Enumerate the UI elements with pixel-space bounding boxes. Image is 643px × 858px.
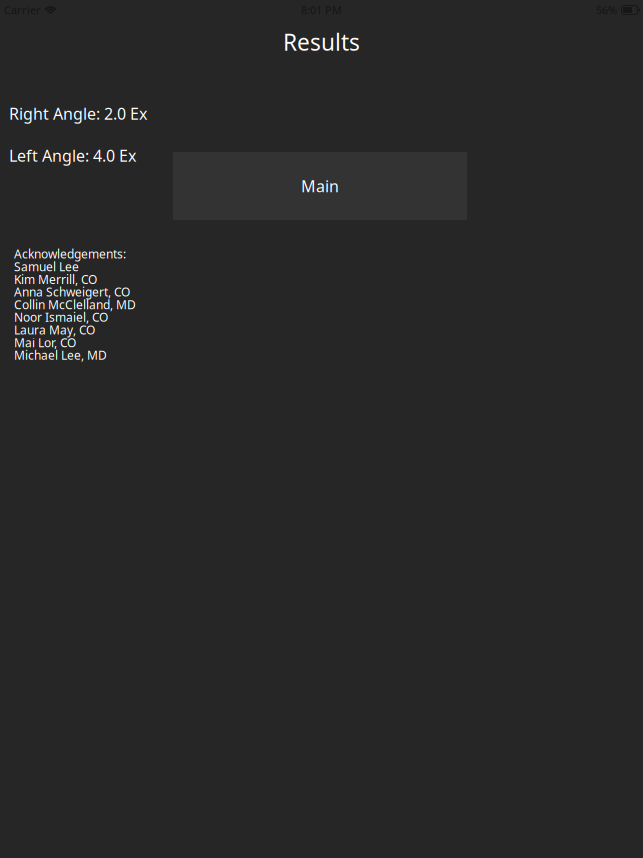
button[interactable]: Main bbox=[173, 152, 467, 220]
staticText: Collin McClelland, MD bbox=[14, 297, 136, 312]
staticText: Michael Lee, MD bbox=[14, 347, 107, 363]
staticText: Left Angle: 4.0 Ex bbox=[9, 145, 136, 166]
staticText: Mai Lor, CO bbox=[14, 335, 76, 350]
staticText: Anna Schweigert, CO bbox=[14, 284, 130, 300]
staticText: Main bbox=[301, 175, 339, 197]
staticText: 8:01 PM bbox=[301, 3, 342, 17]
staticText: Right Angle: 2.0 Ex bbox=[9, 103, 147, 124]
staticText: Samuel Lee bbox=[14, 259, 79, 274]
staticText: Noor Ismaiel, CO bbox=[14, 309, 108, 325]
staticText: Acknowledgements: bbox=[14, 246, 126, 262]
staticText: Kim Merrill, CO bbox=[14, 271, 97, 287]
staticText: 56% bbox=[596, 3, 617, 17]
staticText: Carrier bbox=[4, 3, 41, 17]
staticText: Results bbox=[283, 27, 360, 57]
staticText: Laura May, CO bbox=[14, 322, 95, 338]
